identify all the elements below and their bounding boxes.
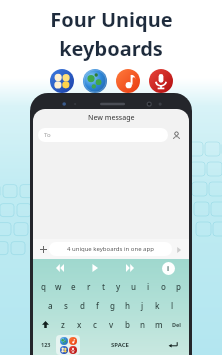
button[interactable]: q — [36, 277, 51, 296]
staticText: b — [125, 319, 130, 330]
staticText: k — [155, 300, 160, 311]
button[interactable]: Enter — [160, 334, 186, 355]
button[interactable]: Music keyboard — [116, 69, 140, 93]
staticText: y — [116, 281, 121, 292]
button[interactable]: Switch keyboard — [56, 335, 80, 355]
staticText: i — [147, 281, 150, 292]
button[interactable]: z — [55, 315, 71, 334]
button[interactable]: f — [90, 296, 105, 315]
staticText: t — [102, 281, 106, 292]
button[interactable]: u — [126, 277, 141, 296]
staticText: s — [64, 300, 68, 311]
staticText: n — [140, 319, 146, 330]
staticText: e — [71, 281, 76, 292]
staticText: a — [48, 300, 53, 311]
staticText: r — [87, 281, 91, 292]
staticText: To — [44, 131, 51, 139]
button[interactable]: c — [87, 315, 103, 334]
button[interactable]: Add attachment — [37, 243, 49, 255]
button[interactable]: To — [38, 128, 168, 142]
button[interactable]: p — [171, 277, 186, 296]
button[interactable]: h — [120, 296, 135, 315]
staticText: z — [61, 319, 65, 330]
button[interactable]: n — [135, 315, 151, 334]
button[interactable]: SPACE — [80, 334, 160, 355]
staticText: f — [96, 300, 99, 311]
button[interactable]: j — [135, 296, 150, 315]
button[interactable]: 123 — [36, 334, 56, 355]
button[interactable]: m — [151, 315, 167, 334]
staticText: g — [110, 300, 115, 311]
button[interactable]: v — [103, 315, 119, 334]
button[interactable]: Send — [172, 243, 185, 256]
button[interactable]: x — [71, 315, 87, 334]
staticText: x — [77, 319, 82, 330]
staticText: 123 — [41, 341, 51, 348]
staticText: q — [41, 281, 46, 292]
button[interactable]: Shift — [36, 315, 55, 334]
staticText: o — [161, 281, 166, 292]
staticText: v — [109, 319, 114, 330]
staticText: m — [155, 319, 163, 330]
button[interactable]: g — [105, 296, 120, 315]
staticText: d — [80, 300, 85, 311]
staticText: New message — [88, 113, 135, 123]
button[interactable]: s — [58, 296, 74, 315]
staticText: p — [176, 281, 181, 292]
button[interactable]: Rewind — [54, 262, 66, 274]
button[interactable]: Add contact — [168, 127, 184, 143]
button[interactable]: Voice keyboard — [149, 69, 173, 93]
staticText: keyboards — [59, 35, 163, 62]
staticText: 4 unique keyboards in one app — [67, 245, 154, 253]
button[interactable]: k — [150, 296, 165, 315]
staticText: i — [167, 264, 170, 274]
staticText: SPACE — [111, 341, 129, 349]
staticText: j — [141, 300, 144, 311]
button[interactable]: Del — [167, 315, 186, 334]
button[interactable]: y — [111, 277, 126, 296]
button[interactable]: a — [42, 296, 58, 315]
button[interactable]: Emoji keyboard — [50, 69, 74, 93]
staticText: Del — [172, 321, 181, 328]
button[interactable]: o — [156, 277, 171, 296]
staticText: c — [93, 319, 97, 330]
button[interactable]: i — [141, 277, 156, 296]
button[interactable]: Play — [89, 262, 101, 274]
button[interactable]: Fast forward — [124, 262, 136, 274]
button[interactable]: b — [119, 315, 135, 334]
button[interactable]: r — [81, 277, 96, 296]
button[interactable]: t — [96, 277, 111, 296]
button[interactable]: w — [51, 277, 66, 296]
button[interactable]: l — [165, 296, 180, 315]
button[interactable]: 4 unique keyboards in one app — [49, 242, 172, 256]
staticText: u — [131, 281, 137, 292]
staticText: l — [171, 300, 174, 311]
staticText: w — [55, 281, 62, 292]
button[interactable]: Language keyboard — [83, 69, 107, 93]
staticText: h — [125, 300, 131, 311]
button[interactable]: d — [74, 296, 90, 315]
button[interactable]: e — [66, 277, 81, 296]
button[interactable]: Info — [162, 262, 175, 275]
staticText: Four Unique — [50, 6, 173, 33]
